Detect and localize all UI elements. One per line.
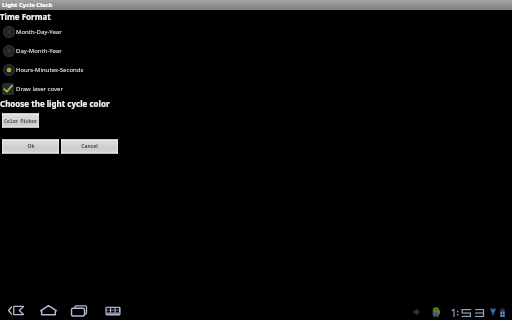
button[interactable]: Keyboard [104,303,121,318]
staticText: Day-Month-Year [16,47,62,55]
button[interactable]: Day-Month-Year [0,41,512,60]
staticText: Choose the light cycle color [0,98,110,109]
staticText: Hours-Minutes-Seconds [16,66,84,74]
button[interactable]: Ok [2,139,59,154]
staticText: Ok [27,143,35,150]
button[interactable]: Cancel [61,139,118,154]
staticText: Time Format [0,11,51,22]
staticText: Color Picker [4,118,37,124]
staticText: Light Cycle Clock [2,1,53,9]
button[interactable]: Draw laser cover [0,79,512,98]
button[interactable]: Month-Day-Year [0,22,512,41]
staticText: Draw laser cover [16,85,63,93]
button[interactable]: Home [39,303,57,318]
button[interactable]: Back [8,303,24,318]
button[interactable]: Color Picker [2,113,39,128]
button[interactable]: Recent apps [71,303,87,318]
staticText: Cancel [81,143,98,150]
button[interactable]: Hours-Minutes-Seconds [0,60,512,79]
staticText: Month-Day-Year [16,28,62,36]
